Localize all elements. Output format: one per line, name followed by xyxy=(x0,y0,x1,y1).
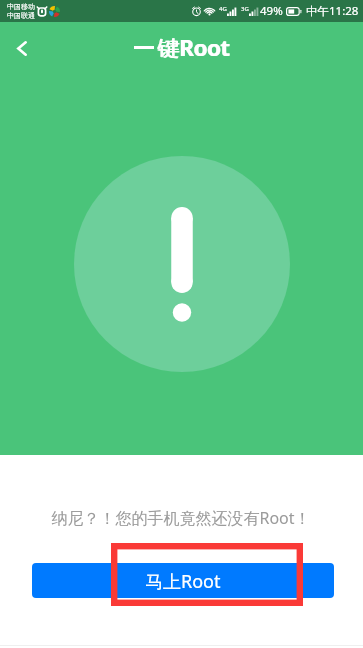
staticText: 中国移动 xyxy=(7,2,35,11)
staticText: 键Root xyxy=(157,32,230,62)
staticText: 中国联通 xyxy=(7,11,35,20)
button[interactable]: 马上Root xyxy=(32,563,334,598)
staticText: 49% xyxy=(260,3,283,19)
staticText: 3G xyxy=(241,5,249,13)
staticText: 马上Root xyxy=(145,569,221,594)
staticText: 4G xyxy=(219,5,227,13)
button[interactable]: Back xyxy=(0,27,46,73)
staticText: 纳尼？！您的手机竟然还没有Root！ xyxy=(51,507,311,529)
staticText: 中午11:28 xyxy=(306,3,359,19)
staticText: 键Root xyxy=(158,32,231,62)
